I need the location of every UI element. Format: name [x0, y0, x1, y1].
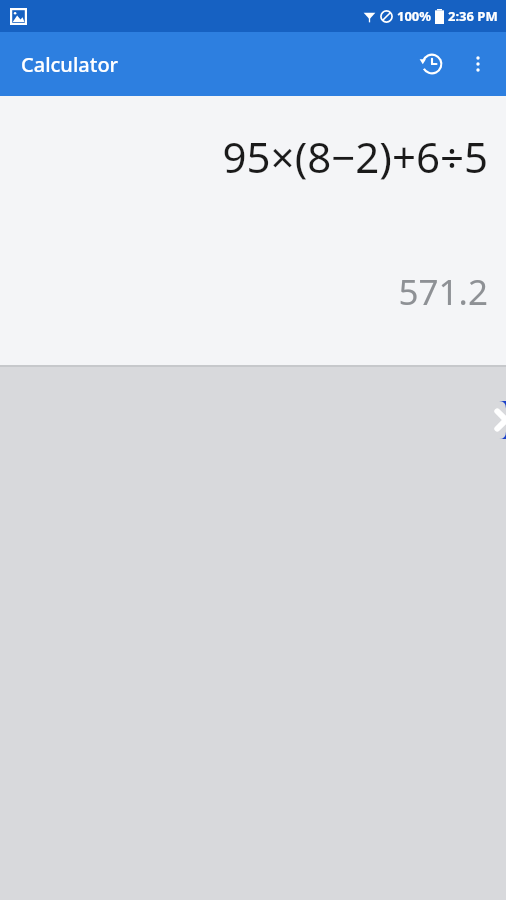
staticText: 100%: [397, 7, 432, 25]
button[interactable]: More options: [456, 42, 500, 86]
staticText: 2:36 PM: [448, 7, 498, 25]
staticText: 95×(8−2)+6÷5: [222, 128, 488, 185]
staticText: Calculator: [21, 51, 119, 78]
button[interactable]: History: [408, 40, 456, 88]
staticText: 571.2: [398, 268, 488, 316]
